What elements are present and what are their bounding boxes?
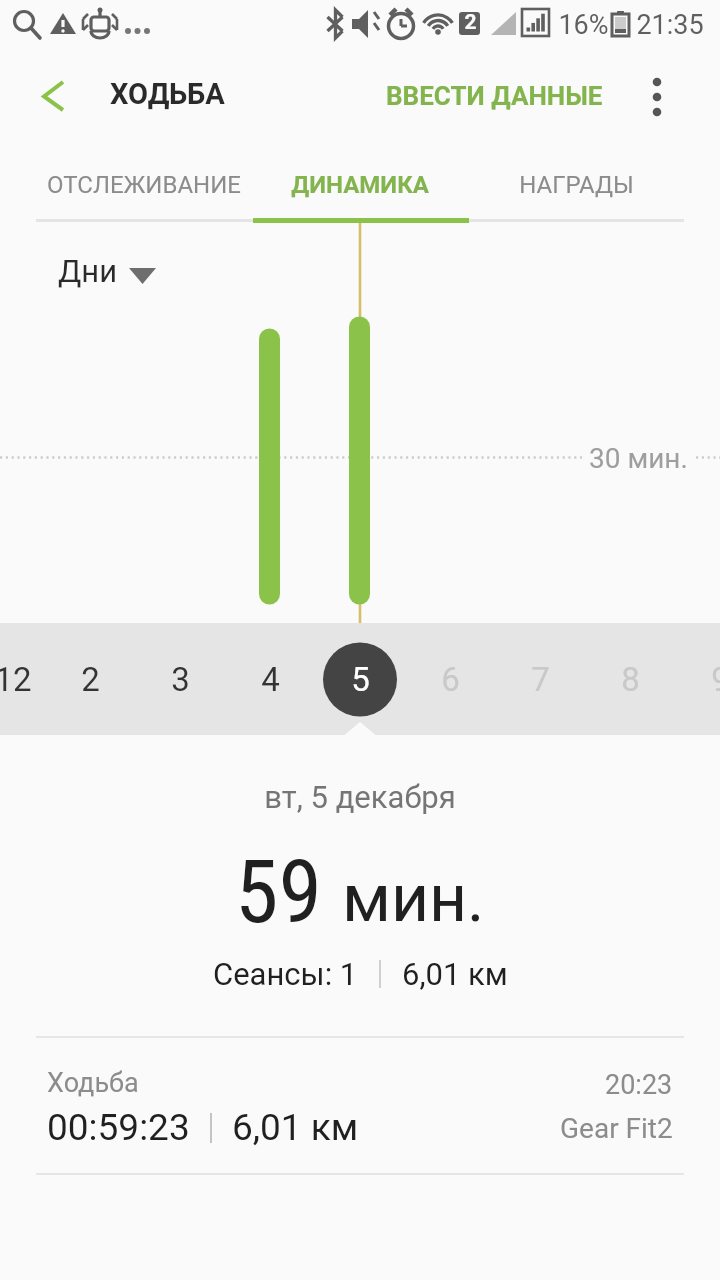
staticText: 9 <box>711 660 720 699</box>
staticText: Дни <box>58 253 118 289</box>
staticText: 2 <box>464 10 477 35</box>
button[interactable]: 6 <box>390 623 510 735</box>
button[interactable]: НАГРАДЫ <box>468 150 684 219</box>
staticText: 2 <box>81 660 100 699</box>
staticText: 16% <box>558 9 609 41</box>
staticText: 7 <box>531 660 550 699</box>
button[interactable]: Дни <box>58 242 156 300</box>
staticText: ВВЕСТИ ДАННЫЕ <box>386 81 603 111</box>
button[interactable]: ОТСЛЕЖИВАНИЕ <box>36 150 252 219</box>
button[interactable]: Ходьба <box>0 1043 720 1178</box>
button[interactable]: Back <box>26 69 82 125</box>
staticText: Gear Fit2 <box>560 1112 673 1145</box>
staticText: 20:23 <box>605 1069 673 1101</box>
staticText: Сеансы: 1 <box>213 956 358 992</box>
staticText: 5 <box>351 660 370 699</box>
staticText: ХОДЬБА <box>110 77 225 111</box>
button[interactable]: 12 <box>0 623 73 735</box>
button[interactable]: ДИНАМИКА <box>252 150 468 219</box>
staticText: 8 <box>621 660 640 699</box>
staticText: 6,01 км <box>402 956 508 992</box>
button[interactable]: 2 <box>30 623 150 735</box>
staticText: мин. <box>342 860 485 937</box>
staticText: 6,01 км <box>232 1106 359 1149</box>
staticText: 59 <box>235 840 322 940</box>
staticText: ДИНАМИКА <box>291 171 429 199</box>
button[interactable]: 4 <box>210 623 330 735</box>
staticText: ОТСЛЕЖИВАНИЕ <box>47 171 241 199</box>
button[interactable]: 3 <box>120 623 240 735</box>
staticText: 00:59:23 <box>47 1106 190 1149</box>
button[interactable]: ВВЕСТИ ДАННЫЕ <box>370 62 618 130</box>
staticText: Ходьба <box>47 1067 139 1099</box>
staticText: 4 <box>261 660 280 699</box>
staticText: вт, 5 декабря <box>264 779 456 815</box>
staticText: 21:35 <box>636 9 704 41</box>
staticText: 6 <box>441 660 460 699</box>
staticText: НАГРАДЫ <box>519 171 634 199</box>
staticText: 30 мин. <box>589 442 688 475</box>
button[interactable]: 5 <box>300 623 420 735</box>
button[interactable]: Search <box>4 2 50 48</box>
button[interactable]: 8 <box>570 623 690 735</box>
staticText: 12 <box>0 660 32 699</box>
button[interactable]: More options <box>628 68 686 126</box>
staticText: 3 <box>171 660 190 699</box>
